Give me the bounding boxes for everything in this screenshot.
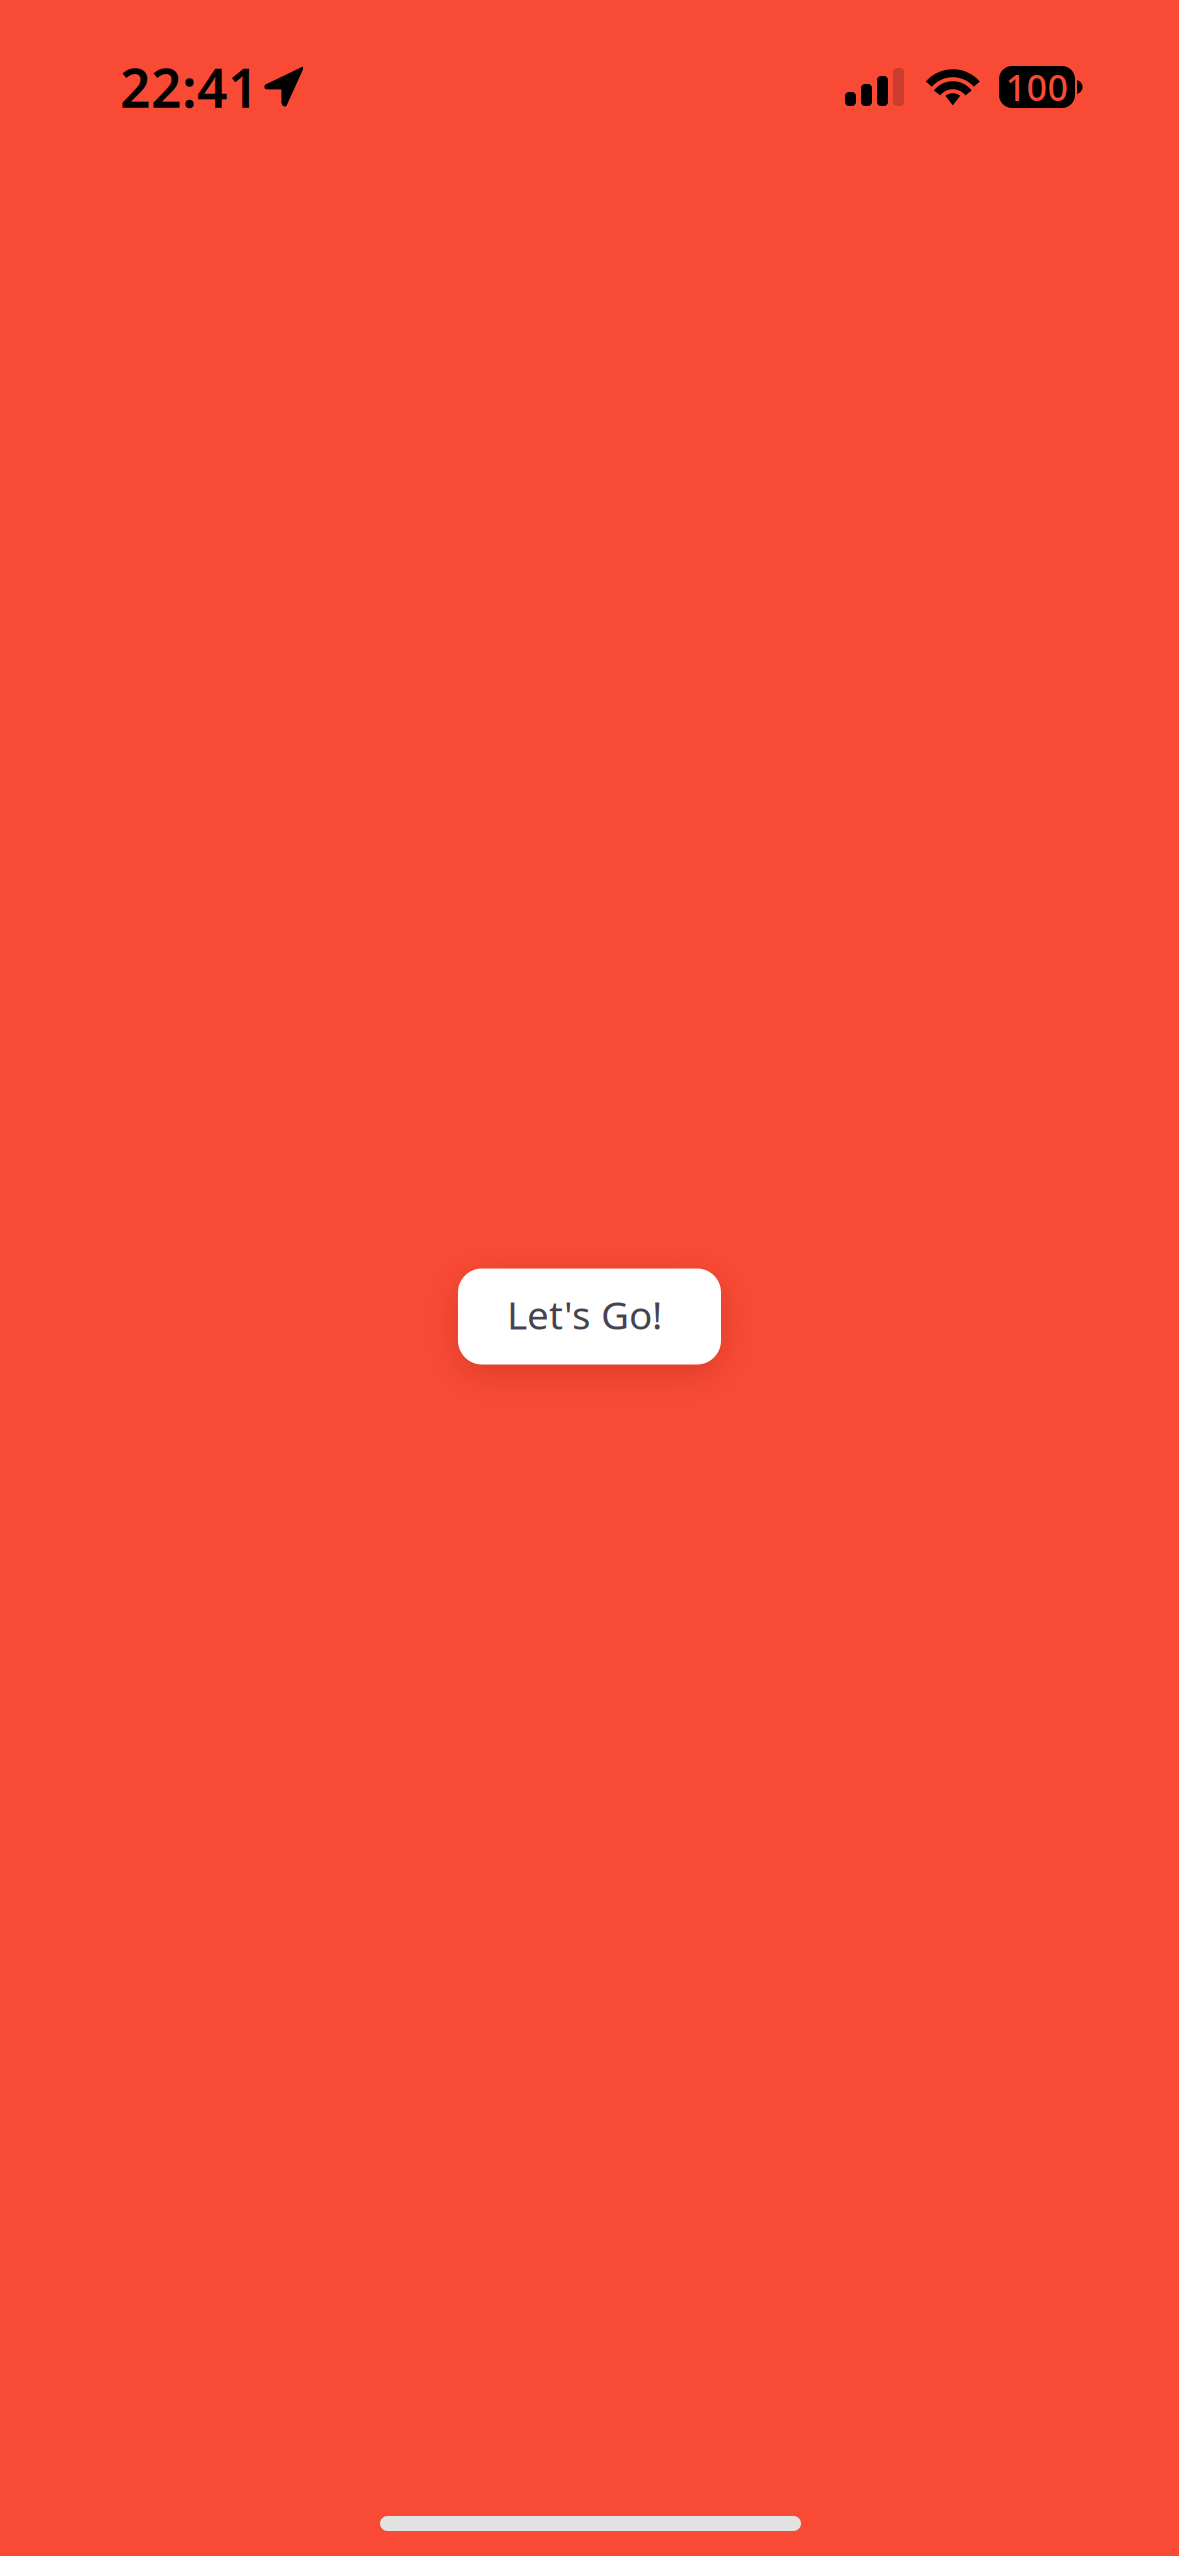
staticText: Let's Go! (507, 1289, 662, 1340)
staticText: 22:41 (120, 52, 259, 122)
button[interactable]: Let's Go! (458, 1268, 721, 1364)
staticText: 100 (1005, 63, 1068, 111)
